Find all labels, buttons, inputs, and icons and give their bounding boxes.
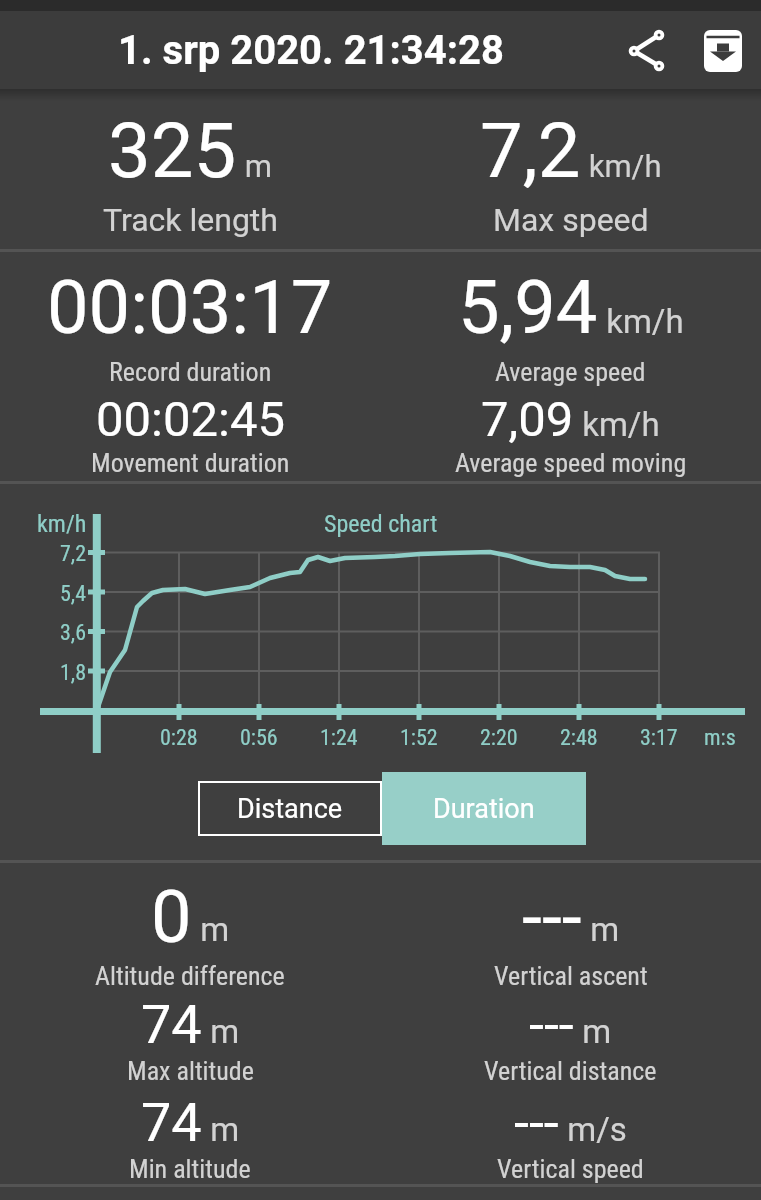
staticText: Distance <box>237 793 343 825</box>
staticText: km/h <box>37 510 87 538</box>
staticText: Track length <box>103 201 278 239</box>
staticText: Average speed moving <box>455 448 687 478</box>
staticText: 74 <box>141 1091 202 1154</box>
staticText: 1. srp 2020. 21:34:28 <box>118 27 504 74</box>
staticText: Max speed <box>493 201 649 239</box>
staticText: 1,8 <box>60 660 87 686</box>
staticText: 0:56 <box>240 725 278 751</box>
staticText: Vertical ascent <box>494 961 648 991</box>
staticText: 1:52 <box>400 725 438 751</box>
staticText: 1:24 <box>320 725 358 751</box>
staticText: m:s <box>704 725 736 751</box>
staticText: 325 <box>108 106 237 195</box>
button[interactable] <box>622 28 666 72</box>
staticText: 3:17 <box>640 725 678 751</box>
button[interactable] <box>704 28 742 72</box>
staticText: 2:48 <box>560 725 598 751</box>
staticText: Vertical speed <box>497 1154 644 1184</box>
staticText: 3,6 <box>60 620 87 646</box>
staticText: Max altitude <box>127 1056 254 1086</box>
staticText: m <box>202 1012 240 1051</box>
staticText: Duration <box>433 793 535 825</box>
staticText: Vertical distance <box>484 1056 657 1086</box>
staticText: km/h <box>574 405 660 444</box>
staticText: m <box>237 148 272 184</box>
staticText: m <box>202 1110 240 1149</box>
staticText: Record duration <box>109 357 272 387</box>
staticText: m/s <box>559 1110 627 1149</box>
staticText: m <box>582 910 620 949</box>
button[interactable]: Duration <box>382 772 586 845</box>
staticText: 0:28 <box>160 725 198 751</box>
staticText: m <box>192 910 230 949</box>
staticText: 7,2 <box>60 541 87 567</box>
staticText: 5,4 <box>60 581 87 607</box>
staticText: --- <box>522 875 582 959</box>
staticText: 7,2 <box>480 106 581 195</box>
staticText: 7,09 <box>481 391 574 448</box>
staticText: 2:20 <box>480 725 518 751</box>
staticText: --- <box>514 1091 559 1154</box>
staticText: km/h <box>581 148 662 184</box>
staticText: Altitude difference <box>95 961 285 991</box>
staticText: Min altitude <box>129 1154 251 1184</box>
staticText: m <box>574 1012 612 1051</box>
staticText: 00:03:17 <box>47 264 333 351</box>
staticText: 74 <box>141 993 202 1056</box>
staticText: Movement duration <box>91 448 290 478</box>
staticText: 5,94 <box>458 264 598 351</box>
staticText: 00:02:45 <box>96 391 285 448</box>
staticText: Speed chart <box>324 510 438 538</box>
staticText: Average speed <box>495 357 646 387</box>
staticText: km/h <box>598 302 684 341</box>
staticText: --- <box>529 993 574 1056</box>
staticText: 0 <box>151 875 192 959</box>
button[interactable]: Distance <box>198 781 382 836</box>
